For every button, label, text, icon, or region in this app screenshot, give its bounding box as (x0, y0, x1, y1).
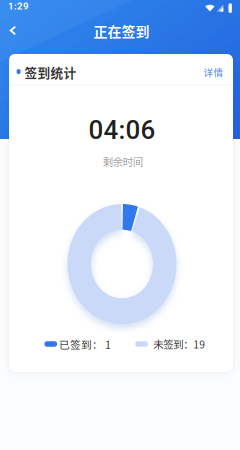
button[interactable]: 详情 (204, 65, 224, 79)
staticText: 详情 (204, 65, 224, 79)
staticText: 剩余时间 (103, 154, 143, 169)
staticText: 已签到： 1 (59, 336, 111, 352)
staticText: 1:29 (8, 0, 29, 12)
staticText: 正在签到 (93, 21, 149, 41)
staticText: 未签到：19 (153, 336, 205, 352)
button[interactable]: Back (9, 25, 18, 35)
staticText: 签到统计 (24, 63, 76, 81)
staticText: 04:06 (88, 115, 155, 145)
